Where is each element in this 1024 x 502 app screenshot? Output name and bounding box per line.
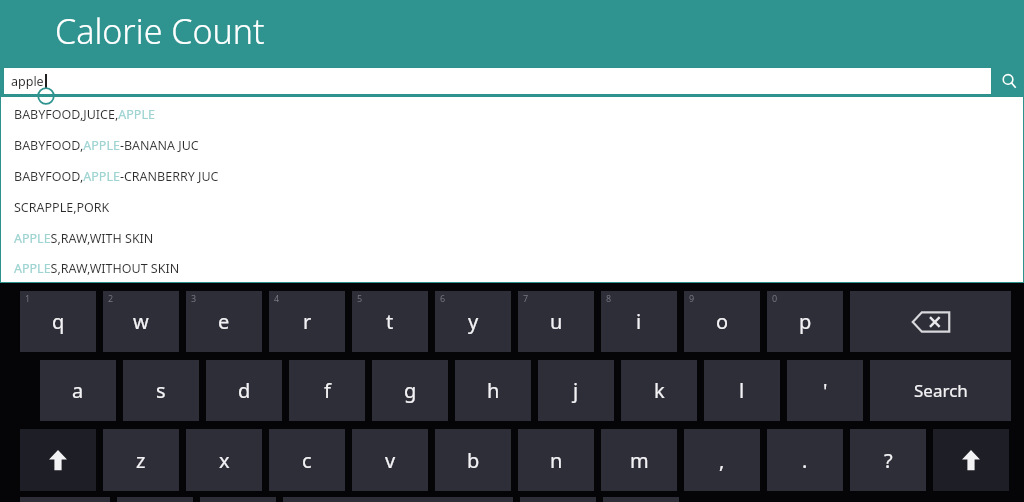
staticText: 5 bbox=[357, 292, 363, 304]
button[interactable]: j bbox=[538, 360, 614, 421]
button[interactable]: ? bbox=[850, 429, 926, 491]
staticText: h bbox=[487, 377, 500, 404]
button[interactable]: APPLES,RAW,WITHOUT SKIN bbox=[0, 254, 1024, 283]
button[interactable]: g bbox=[372, 360, 448, 421]
staticText: m bbox=[630, 447, 649, 474]
button[interactable]: l bbox=[704, 360, 780, 421]
button[interactable]: , bbox=[684, 429, 760, 491]
button[interactable]: p bbox=[767, 291, 843, 352]
button[interactable]: q bbox=[20, 291, 96, 352]
staticText: r bbox=[303, 308, 312, 335]
staticText: k bbox=[654, 377, 665, 404]
staticText: 7 bbox=[523, 292, 529, 304]
staticText: 8 bbox=[606, 292, 612, 304]
staticText: BABYFOOD,JUICE,APPLE bbox=[14, 106, 155, 123]
staticText: q bbox=[52, 308, 65, 335]
button[interactable]: c bbox=[269, 429, 345, 491]
button[interactable]: BABYFOOD,APPLE-CRANBERRY JUC bbox=[0, 161, 1024, 192]
staticText: t bbox=[386, 308, 394, 335]
staticText: 1 bbox=[25, 292, 31, 304]
staticText: l bbox=[739, 377, 745, 404]
staticText: f bbox=[324, 377, 331, 404]
staticText: apple bbox=[11, 73, 44, 90]
button[interactable]: b bbox=[435, 429, 511, 491]
staticText: , bbox=[719, 447, 725, 474]
staticText: c bbox=[302, 447, 312, 474]
staticText: ' bbox=[823, 377, 828, 404]
button[interactable]: d bbox=[206, 360, 282, 421]
button[interactable]: i bbox=[601, 291, 677, 352]
button[interactable]: n bbox=[518, 429, 594, 491]
button[interactable]: o bbox=[684, 291, 760, 352]
staticText: v bbox=[385, 447, 396, 474]
button[interactable]: ' bbox=[787, 360, 863, 421]
staticText: BABYFOOD,APPLE-BANANA JUC bbox=[14, 137, 199, 154]
staticText: a bbox=[72, 377, 84, 404]
button[interactable]: e bbox=[186, 291, 262, 352]
staticText: j bbox=[573, 377, 579, 404]
button[interactable]: x bbox=[186, 429, 262, 491]
button[interactable]: Search bbox=[870, 360, 1011, 421]
button[interactable]: apple bbox=[3, 67, 992, 95]
button[interactable]: s bbox=[123, 360, 199, 421]
button[interactable]: BABYFOOD,APPLE-BANANA JUC bbox=[0, 130, 1024, 161]
staticText: n bbox=[550, 447, 563, 474]
staticText: Search bbox=[914, 379, 968, 402]
button[interactable]: r bbox=[269, 291, 345, 352]
staticText: 0 bbox=[772, 292, 778, 304]
button[interactable]: f bbox=[289, 360, 365, 421]
button[interactable]: y bbox=[435, 291, 511, 352]
staticText: p bbox=[799, 308, 812, 335]
button[interactable]: Backspace bbox=[850, 291, 1011, 352]
staticText: 3 bbox=[191, 292, 197, 304]
staticText: 4 bbox=[274, 292, 280, 304]
button[interactable]: Shift bbox=[20, 429, 96, 491]
staticText: e bbox=[218, 308, 230, 335]
button[interactable]: h bbox=[455, 360, 531, 421]
staticText: g bbox=[404, 377, 417, 404]
staticText: BABYFOOD,APPLE-CRANBERRY JUC bbox=[14, 168, 219, 185]
button[interactable]: a bbox=[40, 360, 116, 421]
button[interactable]: SCRAPPLE,PORK bbox=[0, 192, 1024, 223]
staticText: z bbox=[136, 447, 146, 474]
button[interactable]: t bbox=[352, 291, 428, 352]
staticText: 9 bbox=[689, 292, 695, 304]
staticText: APPLES,RAW,WITHOUT SKIN bbox=[14, 260, 180, 277]
staticText: s bbox=[156, 377, 166, 404]
button[interactable]: w bbox=[103, 291, 179, 352]
staticText: 2 bbox=[108, 292, 114, 304]
staticText: 6 bbox=[440, 292, 446, 304]
staticText: . bbox=[802, 447, 808, 474]
button[interactable]: z bbox=[103, 429, 179, 491]
staticText: y bbox=[468, 308, 479, 335]
staticText: o bbox=[716, 308, 729, 335]
button[interactable]: v bbox=[352, 429, 428, 491]
button[interactable]: . bbox=[767, 429, 843, 491]
staticText: b bbox=[467, 447, 480, 474]
button[interactable]: m bbox=[601, 429, 677, 491]
staticText: x bbox=[219, 447, 230, 474]
staticText: APPLES,RAW,WITH SKIN bbox=[14, 230, 154, 247]
button[interactable]: Search bbox=[994, 66, 1024, 96]
button[interactable]: BABYFOOD,JUICE,APPLE bbox=[0, 99, 1024, 130]
staticText: w bbox=[133, 308, 149, 335]
button[interactable]: APPLES,RAW,WITH SKIN bbox=[0, 223, 1024, 254]
staticText: SCRAPPLE,PORK bbox=[14, 199, 110, 216]
staticText: ? bbox=[884, 447, 893, 474]
staticText: Calorie Count bbox=[55, 8, 265, 54]
staticText: i bbox=[636, 308, 642, 335]
staticText: d bbox=[238, 377, 251, 404]
button[interactable]: Shift bbox=[933, 429, 1009, 491]
staticText: u bbox=[550, 308, 563, 335]
button[interactable]: k bbox=[621, 360, 697, 421]
button[interactable]: u bbox=[518, 291, 594, 352]
